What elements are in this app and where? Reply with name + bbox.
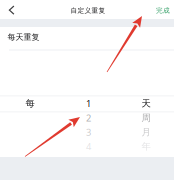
staticText: 年 xyxy=(141,141,150,152)
staticText: 4 xyxy=(86,140,91,153)
staticText: 2 xyxy=(86,112,91,124)
staticText: 每天重复 xyxy=(7,32,39,42)
staticText: 自定义重复 xyxy=(70,6,105,15)
staticText: 3 xyxy=(86,126,91,138)
staticText: 天 xyxy=(141,98,150,109)
staticText: 每 xyxy=(25,98,34,109)
staticText: 周 xyxy=(141,112,150,124)
staticText: 月 xyxy=(141,126,150,138)
button[interactable]: 完成 xyxy=(150,1,174,20)
staticText: 1 xyxy=(86,97,91,110)
button[interactable]: Back xyxy=(1,1,23,20)
button[interactable]: 每天重复 xyxy=(0,25,174,48)
staticText: 完成 xyxy=(156,6,170,15)
